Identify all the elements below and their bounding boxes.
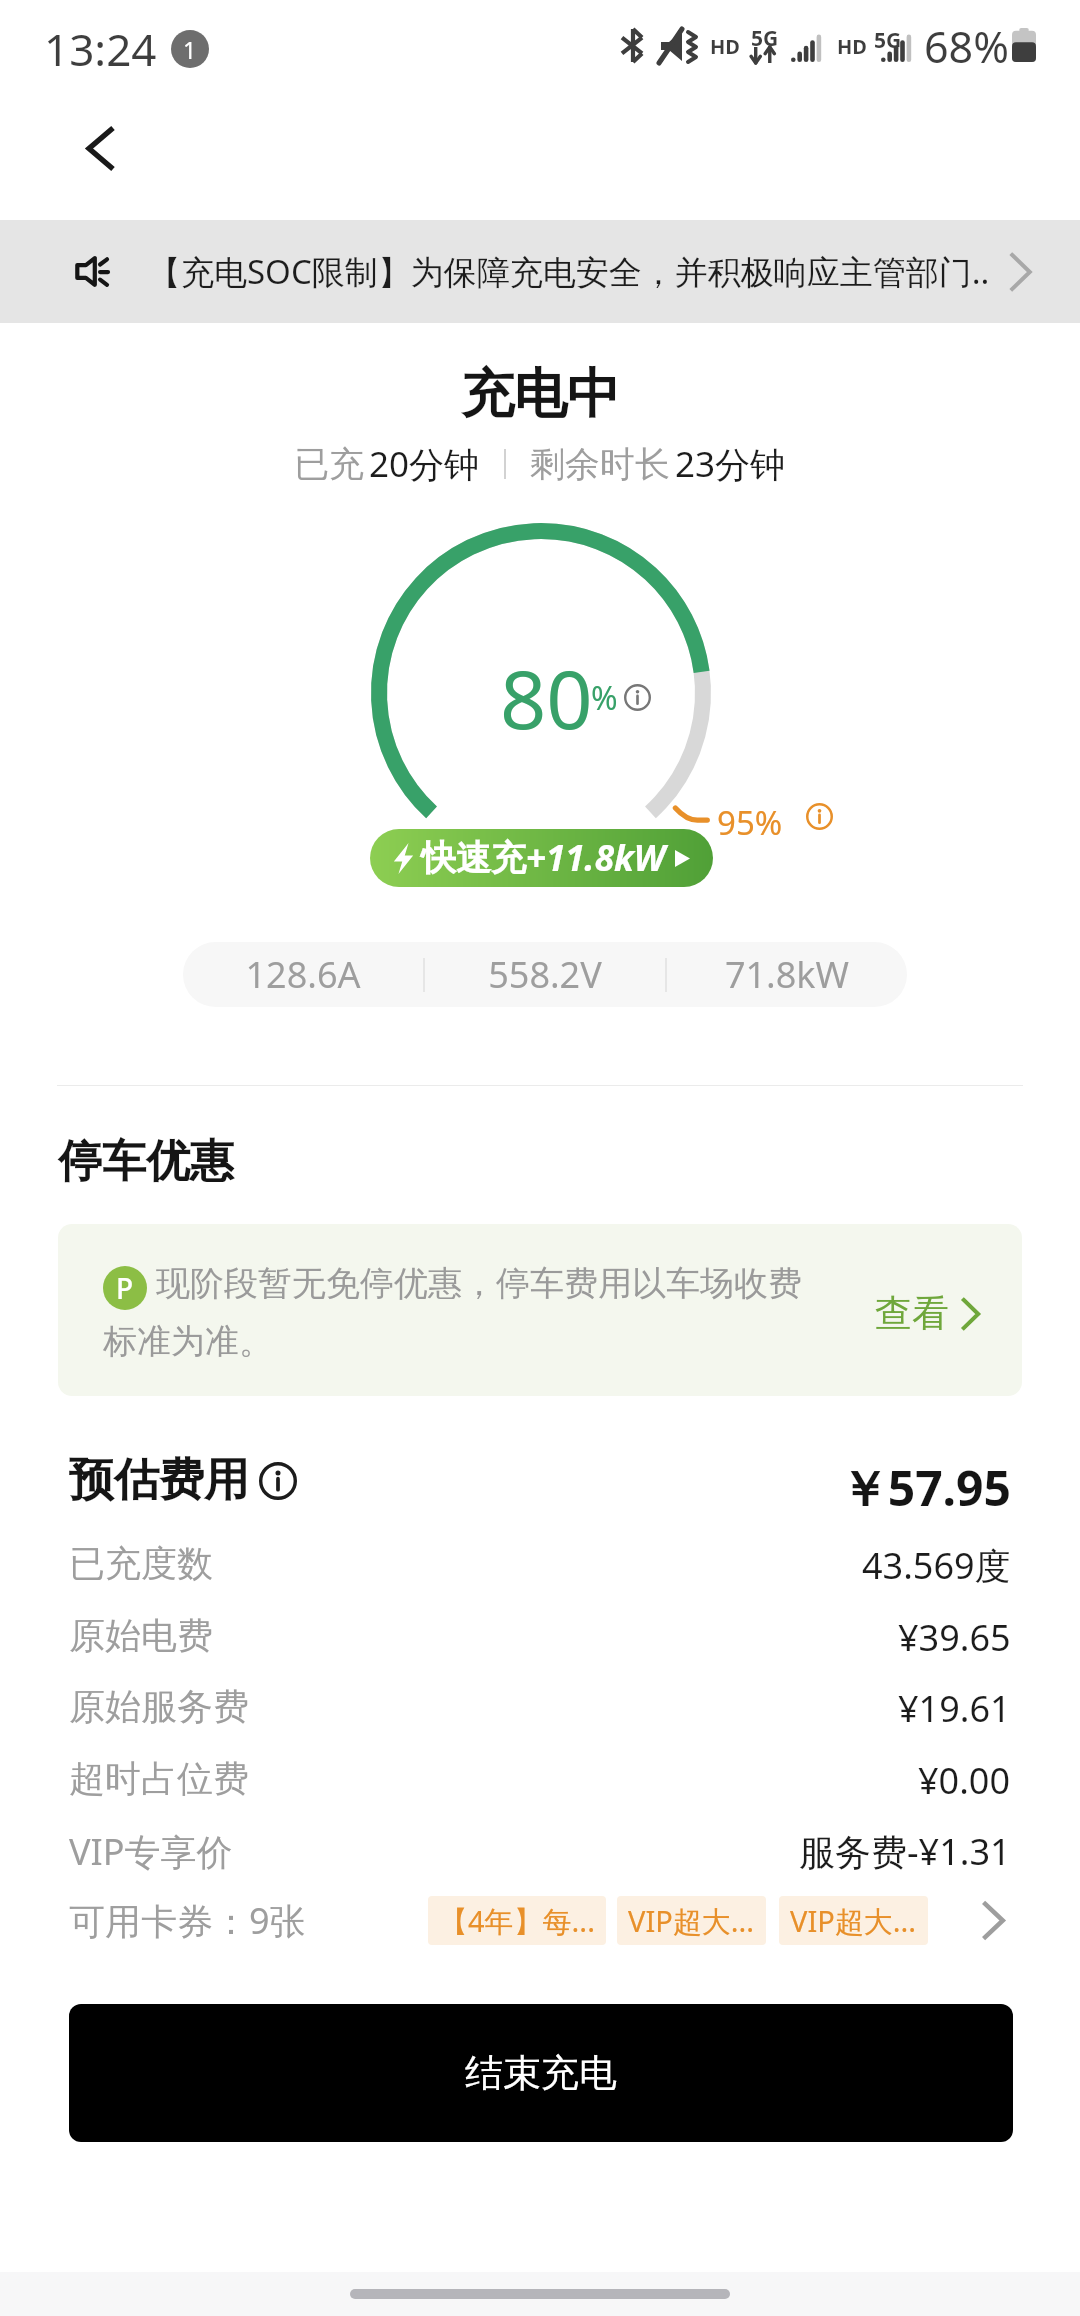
staticText: 原始服务费: [69, 1684, 249, 1728]
staticText: ￥57.95: [0, 1455, 1011, 1521]
button[interactable]: VIP超大...: [617, 1896, 766, 1945]
button[interactable]: VIP超大...: [779, 1896, 928, 1945]
staticText: 558.2V: [425, 950, 665, 999]
staticText: 43.569度: [862, 1541, 1011, 1585]
staticText: 现阶段暂无免停优惠，停车费用以车场收费: [156, 1262, 802, 1305]
staticText: 1: [183, 34, 197, 65]
staticText: P: [116, 1269, 134, 1307]
staticText: 快速充: [421, 836, 526, 880]
button[interactable]: P: [58, 1224, 1022, 1396]
staticText: 20分钟: [369, 440, 480, 488]
staticText: 结束充电: [465, 2049, 617, 2097]
button[interactable]: About charge limit: [806, 803, 833, 830]
button[interactable]: About estimated fee: [259, 1462, 297, 1500]
staticText: 71.8kW: [667, 950, 907, 999]
staticText: 已充: [294, 442, 364, 486]
staticText: 可用卡券：9张: [69, 1896, 306, 1945]
staticText: VIP超大...: [790, 1901, 917, 1941]
staticText: +11.8kW: [526, 834, 666, 882]
button[interactable]: About charge level: [624, 684, 651, 711]
staticText: 5G: [751, 24, 779, 53]
staticText: 128.6A: [183, 950, 423, 999]
staticText: 服务费-¥1.31: [799, 1827, 1011, 1871]
staticText: 标准为准。: [103, 1320, 273, 1363]
staticText: 充电中: [461, 361, 620, 428]
staticText: ¥0.00: [918, 1756, 1011, 1800]
staticText: %: [591, 676, 618, 720]
staticText: 查看: [875, 1290, 949, 1337]
button[interactable]: Back: [56, 104, 144, 192]
staticText: 超时占位费: [69, 1756, 249, 1800]
button[interactable]: 结束充电: [69, 2004, 1013, 2142]
staticText: 95%: [717, 800, 783, 845]
staticText: 停车优惠: [58, 1134, 234, 1189]
staticText: ¥19.61: [898, 1684, 1011, 1728]
staticText: 【4年】每...: [439, 1901, 595, 1941]
staticText: 预估费用: [69, 1452, 249, 1509]
staticText: VIP超大...: [628, 1901, 755, 1941]
staticText: 已充度数: [69, 1541, 213, 1585]
staticText: HD: [710, 33, 740, 60]
button[interactable]: 【充电SOC限制】为保障充电安全，并积极响应主管部门...: [0, 220, 1080, 323]
staticText: 5G: [874, 26, 902, 55]
button[interactable]: 【4年】每...: [428, 1896, 606, 1945]
staticText: 剩余时长: [530, 442, 670, 486]
staticText: VIP专享价: [69, 1827, 233, 1871]
button[interactable]: View all coupons: [983, 1904, 1005, 1937]
staticText: HD: [837, 33, 867, 60]
staticText: ¥39.65: [898, 1613, 1011, 1657]
staticText: 23分钟: [675, 440, 786, 488]
button[interactable]: 快速充: [370, 829, 713, 887]
staticText: 【充电SOC限制】为保障充电安全，并积极响应主管部门...: [148, 249, 990, 294]
staticText: 68%: [924, 17, 1009, 76]
staticText: 13:24: [44, 19, 157, 79]
staticText: 原始电费: [69, 1613, 213, 1657]
staticText: 80: [500, 642, 593, 752]
